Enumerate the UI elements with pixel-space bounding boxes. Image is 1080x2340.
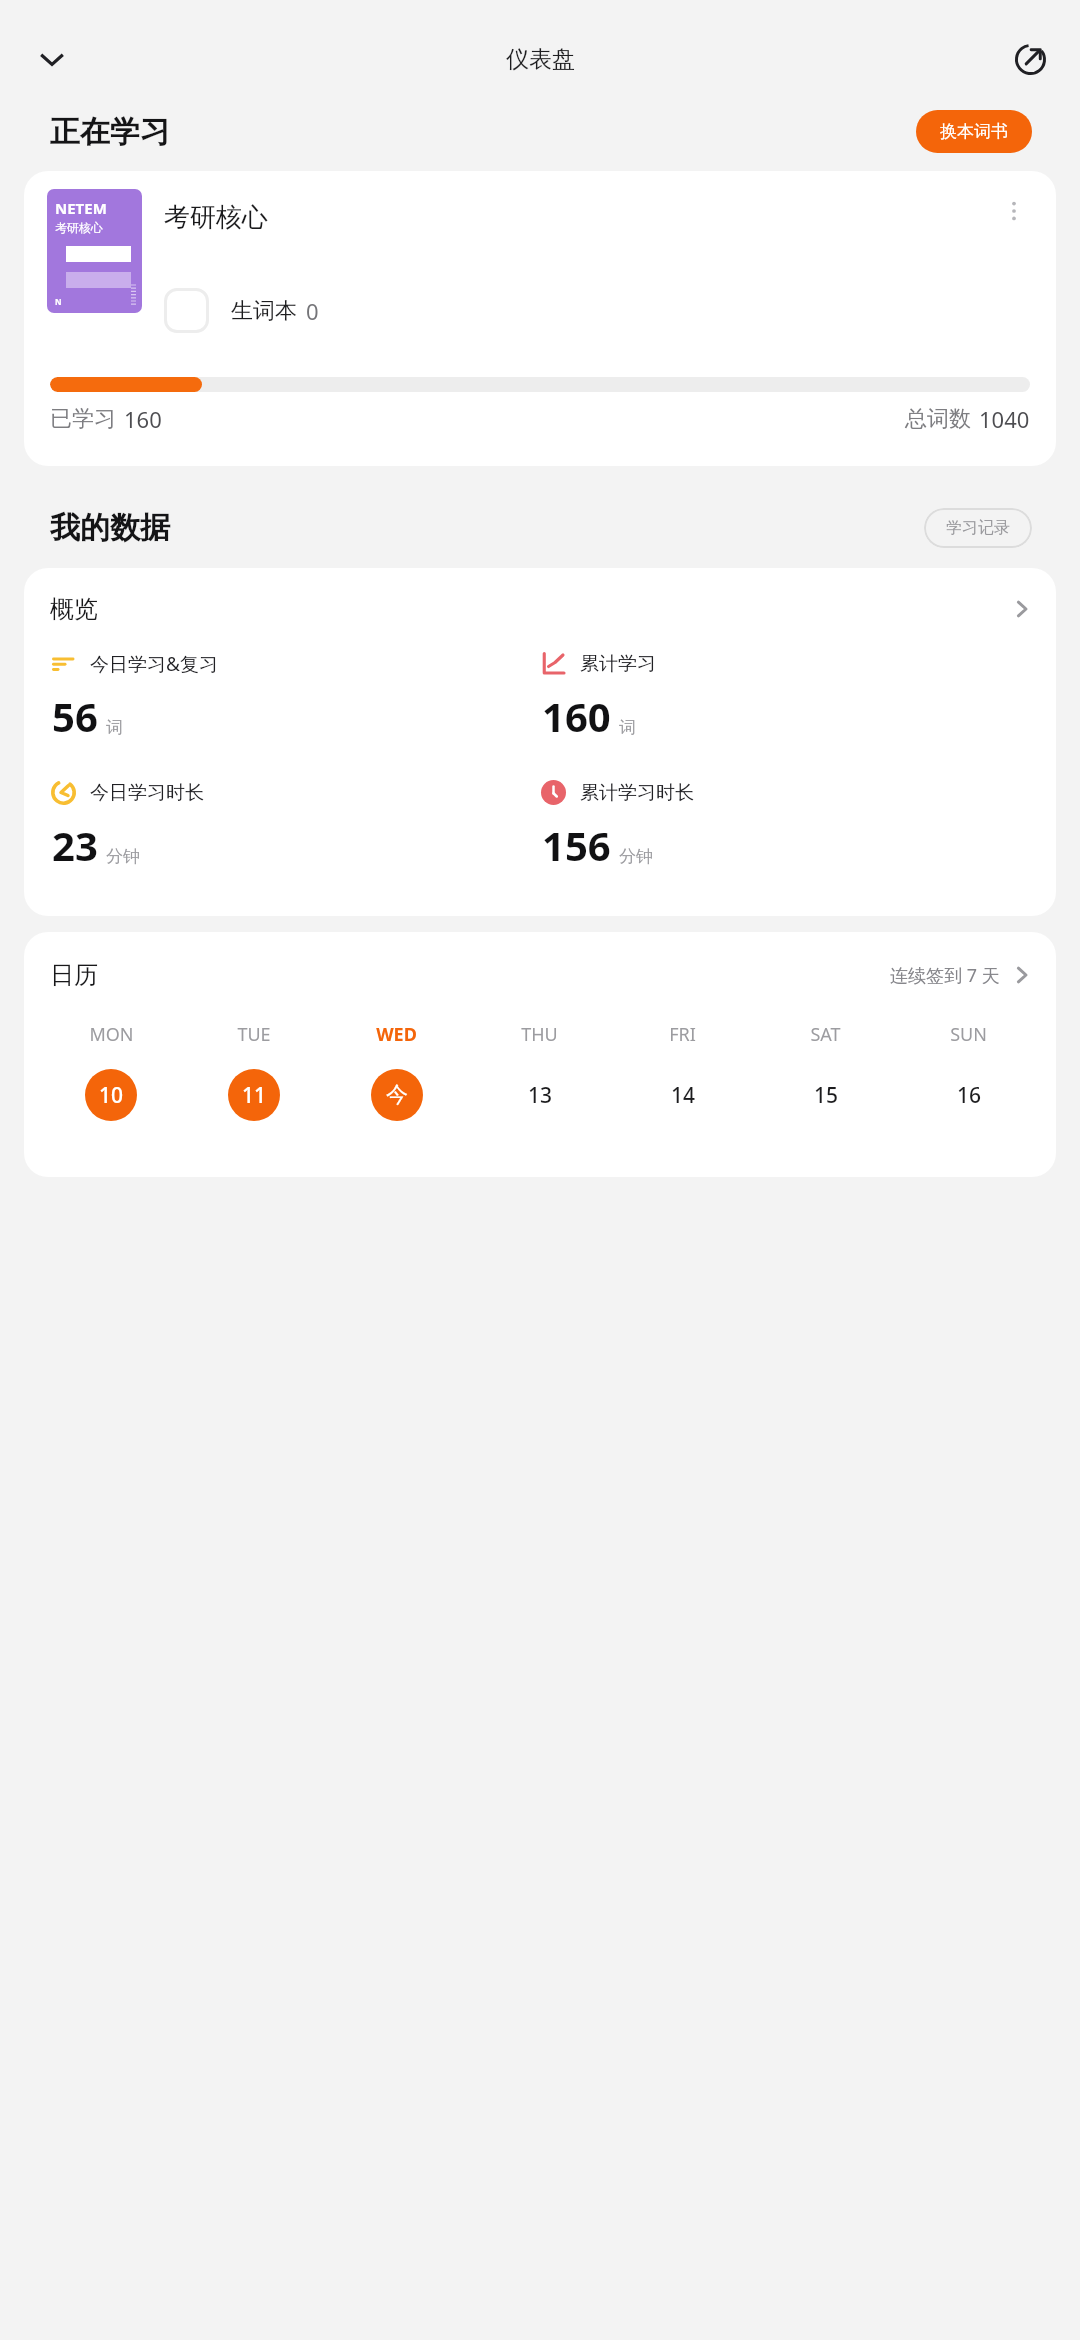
staticText: 23	[52, 818, 98, 872]
staticText: TUE	[237, 1022, 271, 1047]
button[interactable]: 10	[85, 1069, 137, 1121]
staticText: 日历	[50, 960, 98, 990]
staticText: 11	[242, 1081, 267, 1110]
button[interactable]: 11	[228, 1069, 280, 1121]
staticText: 分钟	[106, 846, 140, 867]
staticText: N	[55, 296, 62, 307]
staticText: 14	[671, 1081, 696, 1110]
button[interactable]: 累计学习	[540, 650, 1030, 743]
staticText: MON	[89, 1022, 134, 1047]
staticText: 156	[542, 818, 611, 872]
staticText: SAT	[810, 1022, 841, 1047]
staticText: 16	[957, 1081, 982, 1110]
button[interactable]: 14	[657, 1069, 709, 1121]
button[interactable]: 16	[943, 1069, 995, 1121]
button[interactable]: 换本词书	[916, 110, 1032, 153]
staticText: 正在学习	[50, 113, 170, 151]
button[interactable]: Share	[1002, 31, 1058, 87]
staticText: 0	[306, 296, 319, 326]
button[interactable]: NETEM	[24, 171, 1056, 466]
button[interactable]: 累计学习时长	[540, 779, 1030, 872]
staticText: THU	[521, 1022, 558, 1047]
staticText: 词	[619, 717, 636, 738]
staticText: 15	[814, 1081, 839, 1110]
staticText: 160	[542, 689, 611, 743]
staticText: 学习记录	[946, 518, 1010, 538]
button[interactable]: Collapse	[24, 31, 80, 87]
staticText: NETEM	[55, 198, 107, 218]
staticText: 词	[106, 717, 123, 738]
staticText: 总词数	[905, 405, 971, 433]
staticText: 分钟	[619, 846, 653, 867]
staticText: 56	[52, 689, 98, 743]
staticText: 换本词书	[940, 121, 1008, 142]
staticText: WED	[376, 1022, 417, 1047]
button[interactable]: 15	[800, 1069, 852, 1121]
staticText: 我的数据	[50, 509, 170, 547]
staticText: 概览	[50, 594, 98, 624]
staticText: FRI	[669, 1022, 696, 1047]
staticText: 已学习	[50, 405, 116, 433]
button[interactable]: 今	[371, 1069, 423, 1121]
staticText: 今日学习&复习	[90, 651, 218, 677]
staticText: 仪表盘	[506, 45, 575, 74]
button[interactable]: 生词本	[164, 288, 319, 333]
staticText: 160	[124, 404, 162, 434]
staticText: 13	[528, 1081, 553, 1110]
staticText: 1040	[979, 404, 1030, 434]
staticText: 累计学习时长	[580, 781, 694, 805]
staticText: 今	[386, 1081, 408, 1109]
button[interactable]: 今日学习&复习	[50, 650, 540, 743]
button[interactable]: 13	[514, 1069, 566, 1121]
staticText: 连续签到 7 天	[890, 963, 1000, 988]
staticText: 考研核心	[55, 220, 103, 235]
staticText: 累计学习	[580, 652, 656, 676]
staticText: 生词本	[231, 297, 297, 325]
staticText: SUN	[950, 1022, 987, 1047]
button[interactable]: 学习记录	[924, 508, 1032, 548]
button[interactable]: 今日学习时长	[50, 779, 540, 872]
button[interactable]: 概览	[24, 568, 1056, 632]
staticText: 今日学习时长	[90, 781, 204, 805]
staticText: 考研核心	[164, 201, 268, 234]
staticText: 10	[99, 1081, 124, 1110]
button[interactable]: More options	[992, 189, 1036, 233]
button[interactable]: 日历	[24, 932, 1056, 996]
